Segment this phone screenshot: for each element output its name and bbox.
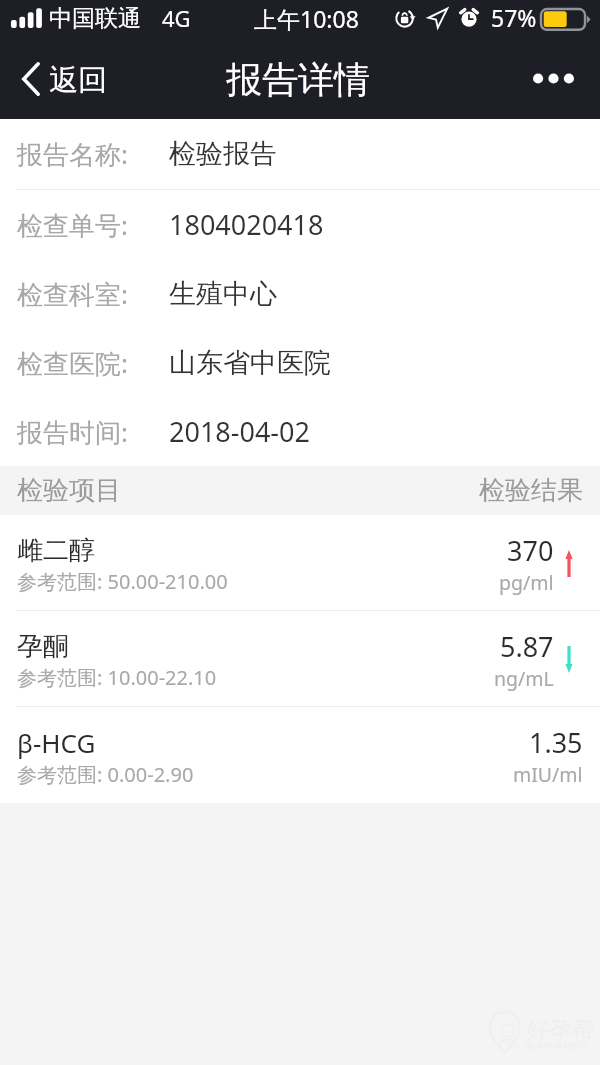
staticText: 2018-04-02 <box>169 413 310 450</box>
staticText: 孕酮 <box>17 630 69 663</box>
button[interactable]: 雌二醇 <box>0 515 600 610</box>
button[interactable]: More options <box>515 56 600 107</box>
button[interactable]: 检查单号: <box>0 190 600 259</box>
staticText: 检验项目 <box>17 474 121 507</box>
button[interactable]: 检查科室: <box>0 259 600 328</box>
button[interactable]: 孕酮 <box>0 611 600 706</box>
button[interactable]: β-HCG <box>0 707 600 802</box>
staticText: 生殖中心 <box>169 277 277 311</box>
staticText: 雌二醇 <box>17 534 95 567</box>
staticText: 山东省中医院 <box>169 346 331 380</box>
staticText: 中国联通 <box>49 4 141 33</box>
staticText: 检验报告 <box>169 137 277 171</box>
staticText: 370 <box>507 532 554 569</box>
staticText: 57% <box>491 2 537 33</box>
staticText: 检查科室: <box>17 276 128 312</box>
staticText: pg/ml <box>499 569 554 596</box>
staticText: 5.87 <box>500 628 554 665</box>
staticText: 返回 <box>49 62 107 99</box>
button[interactable]: 报告时间: <box>0 397 600 466</box>
staticText: 检查单号: <box>17 207 128 243</box>
staticText: 4G <box>162 3 191 33</box>
staticText: ng/mL <box>494 665 554 692</box>
staticText: β-HCG <box>17 725 96 760</box>
staticText: 1804020418 <box>169 206 324 243</box>
staticText: 参考范围: 50.00-210.00 <box>17 568 228 595</box>
staticText: 检查医院: <box>17 345 128 381</box>
staticText: 报告详情 <box>226 57 370 102</box>
staticText: 上午10:08 <box>254 3 359 34</box>
button[interactable]: 报告名称: <box>0 119 600 189</box>
staticText: mIU/ml <box>513 761 583 788</box>
staticText: 检验结果 <box>479 474 583 507</box>
button[interactable]: 检查医院: <box>0 328 600 397</box>
staticText: 报告时间: <box>17 414 128 450</box>
button[interactable]: 返回 <box>0 55 123 108</box>
staticText: 报告名称: <box>17 136 128 172</box>
staticText: 1.35 <box>529 724 583 761</box>
staticText: 参考范围: 0.00-2.90 <box>17 761 194 788</box>
staticText: 参考范围: 10.00-22.10 <box>17 664 217 691</box>
